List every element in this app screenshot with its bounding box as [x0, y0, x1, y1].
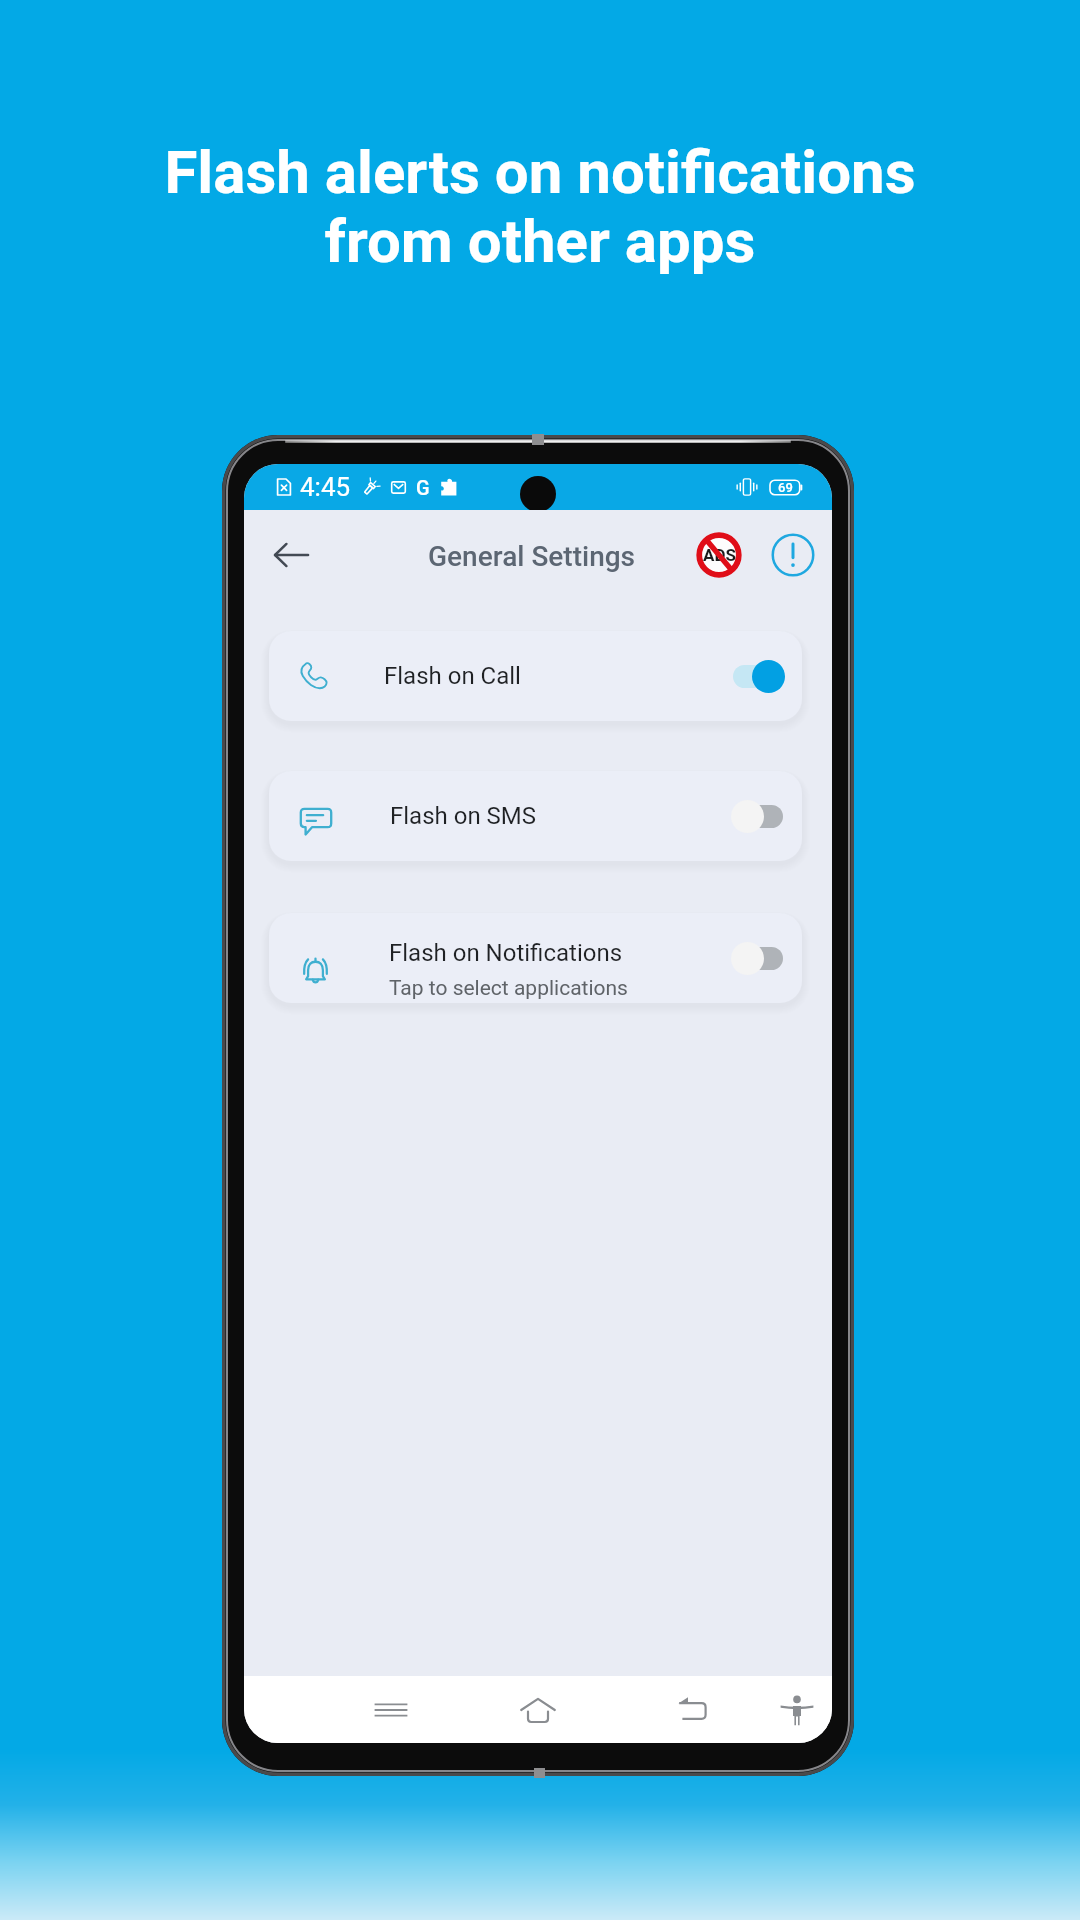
button[interactable]: Flash on Notifications: [269, 913, 802, 1003]
staticText: Flash on Notifications: [389, 939, 623, 967]
button[interactable]: Flash on SMS, off: [731, 798, 785, 834]
button[interactable]: Recents: [362, 1681, 420, 1739]
staticText: Flash on Call: [384, 662, 521, 690]
button[interactable]: Remove ads: [692, 528, 746, 582]
staticText: 4:45: [300, 472, 351, 502]
staticText: 69: [778, 480, 793, 495]
button[interactable]: Info: [766, 528, 820, 582]
staticText: Tap to select applications: [389, 976, 628, 1001]
button[interactable]: Back: [262, 526, 320, 584]
staticText: ADS: [703, 545, 736, 565]
button[interactable]: Accessibility: [768, 1681, 826, 1739]
staticText: Flash alerts on notifications from other…: [0, 137, 1080, 276]
staticText: G: [416, 476, 430, 499]
button[interactable]: Back: [663, 1681, 721, 1739]
button[interactable]: Flash on SMS: [269, 771, 802, 861]
button[interactable]: Home: [509, 1681, 567, 1739]
button[interactable]: Flash on Call, on: [731, 658, 785, 694]
staticText: General Settings: [428, 540, 636, 573]
button[interactable]: Flash on Call: [269, 631, 802, 721]
staticText: Flash on SMS: [390, 802, 537, 830]
button[interactable]: Flash on Notifications, off: [731, 940, 785, 976]
